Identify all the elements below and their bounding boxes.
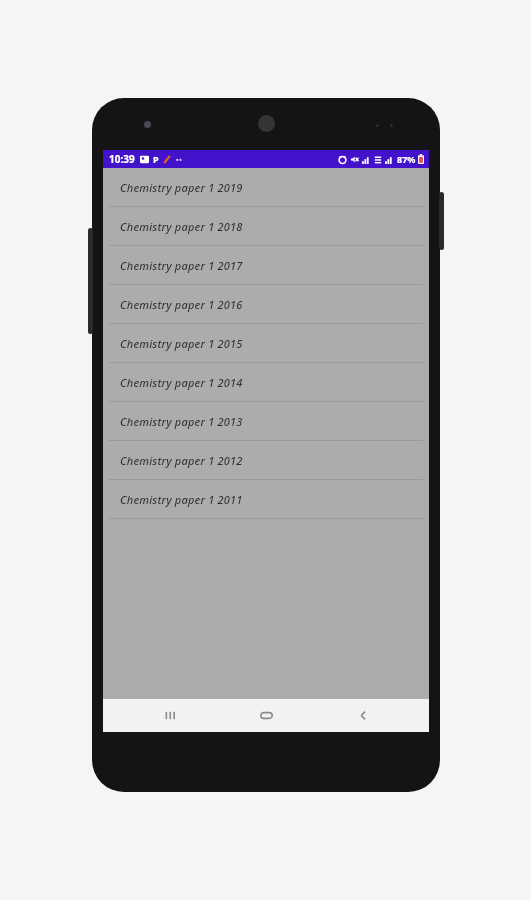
button[interactable]: Home <box>236 699 296 732</box>
button[interactable]: Recent apps <box>140 699 200 732</box>
staticText: Chemistry paper 1 2014 <box>120 375 243 390</box>
button[interactable]: Chemistry paper 1 2013 <box>103 402 429 441</box>
button[interactable]: Back <box>333 699 393 732</box>
staticText: P <box>153 153 159 165</box>
button[interactable]: Chemistry paper 1 2018 <box>103 207 429 246</box>
staticText: Chemistry paper 1 2018 <box>120 219 243 234</box>
staticText: Chemistry paper 1 2013 <box>120 414 243 429</box>
staticText: Chemistry paper 1 2011 <box>120 492 243 507</box>
staticText: Chemistry paper 1 2017 <box>120 258 243 273</box>
button[interactable]: Chemistry paper 1 2019 <box>103 168 429 207</box>
button[interactable]: Chemistry paper 1 2017 <box>103 246 429 285</box>
staticText: 87% <box>397 153 416 165</box>
staticText: Chemistry paper 1 2015 <box>120 336 243 351</box>
staticText: Chemistry paper 1 2016 <box>120 297 243 312</box>
staticText: Chemistry paper 1 2019 <box>120 180 243 195</box>
button[interactable]: Chemistry paper 1 2015 <box>103 324 429 363</box>
button[interactable]: Chemistry paper 1 2016 <box>103 285 429 324</box>
staticText: Chemistry paper 1 2012 <box>120 453 243 468</box>
button[interactable]: Chemistry paper 1 2011 <box>103 480 429 519</box>
button[interactable]: Chemistry paper 1 2014 <box>103 363 429 402</box>
staticText: 10:39 <box>109 152 135 166</box>
button[interactable]: Chemistry paper 1 2012 <box>103 441 429 480</box>
